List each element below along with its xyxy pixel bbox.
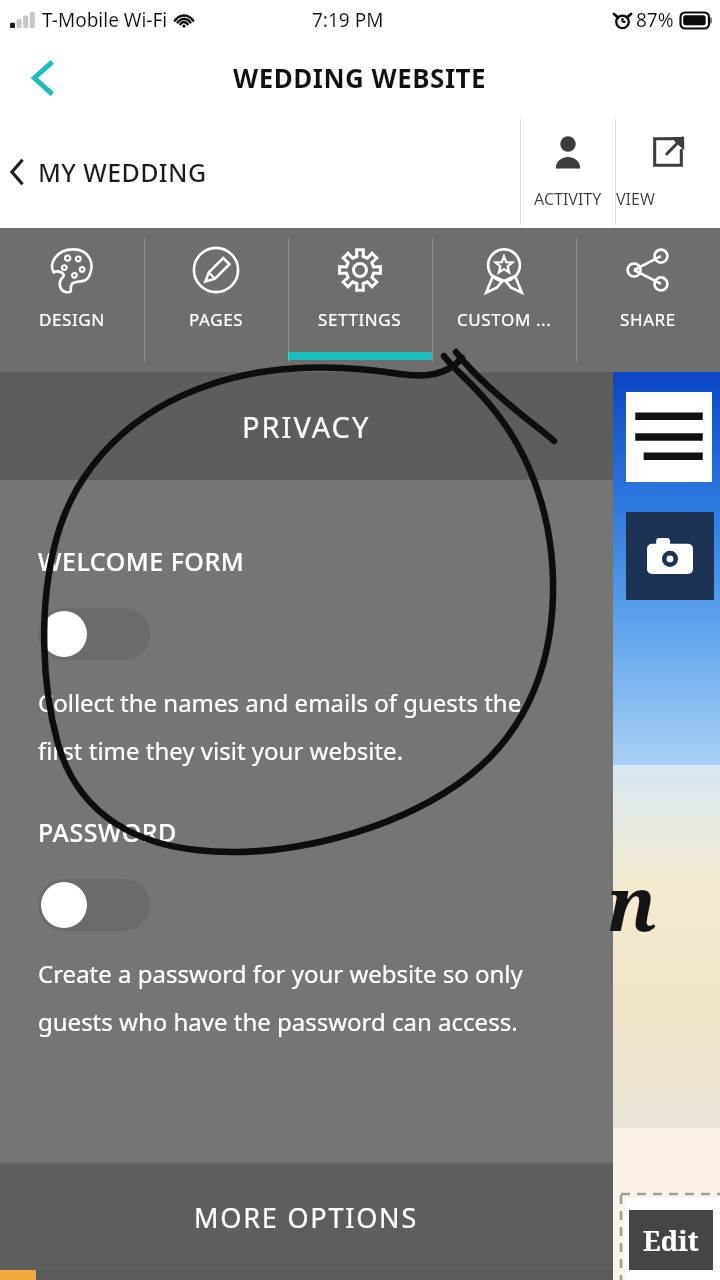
button[interactable]: MY WEDDING bbox=[0, 115, 518, 228]
staticText: PRIVACY bbox=[242, 407, 371, 446]
button[interactable]: Menu bbox=[626, 392, 712, 482]
button[interactable]: CUSTOM ... bbox=[432, 228, 576, 372]
button[interactable]: VIEW WEBSITE bbox=[616, 115, 720, 228]
staticText: WEDDING WEBSITE bbox=[233, 60, 487, 95]
staticText: DESIGN bbox=[39, 308, 105, 331]
staticText: CUSTOM ... bbox=[457, 308, 552, 331]
staticText: ACTIVITY bbox=[534, 188, 602, 210]
button[interactable] bbox=[38, 879, 150, 931]
button[interactable]: PAGES bbox=[144, 228, 288, 372]
staticText: PAGES bbox=[189, 308, 244, 331]
staticText: 7:19 PM bbox=[312, 7, 384, 33]
button[interactable]: SETTINGS bbox=[288, 228, 432, 372]
staticText: VIEW WEBSITE bbox=[616, 188, 720, 210]
staticText: WELCOME FORM bbox=[38, 544, 245, 578]
staticText: n bbox=[607, 852, 657, 953]
staticText: Collect the names and emails of guests t… bbox=[38, 686, 522, 767]
button[interactable]: SHARE bbox=[576, 228, 720, 372]
button[interactable]: Back bbox=[12, 48, 72, 108]
button[interactable] bbox=[38, 608, 150, 660]
staticText: SHARE bbox=[620, 308, 676, 331]
button[interactable]: Add photo bbox=[626, 512, 714, 600]
staticText: PASSWORD bbox=[38, 815, 177, 849]
staticText: Edit bbox=[643, 1222, 699, 1259]
button[interactable]: DESIGN bbox=[0, 228, 144, 372]
button[interactable]: ACTIVITY bbox=[521, 115, 615, 228]
staticText: SETTINGS bbox=[318, 308, 402, 331]
staticText: Create a password for your website so on… bbox=[38, 957, 523, 1038]
button[interactable]: MORE OPTIONS bbox=[0, 1164, 720, 1270]
staticText: T-Mobile Wi-Fi bbox=[42, 7, 168, 33]
staticText: 87% bbox=[636, 7, 674, 33]
staticText: MORE OPTIONS bbox=[194, 1199, 419, 1236]
staticText: MY WEDDING bbox=[38, 155, 207, 189]
